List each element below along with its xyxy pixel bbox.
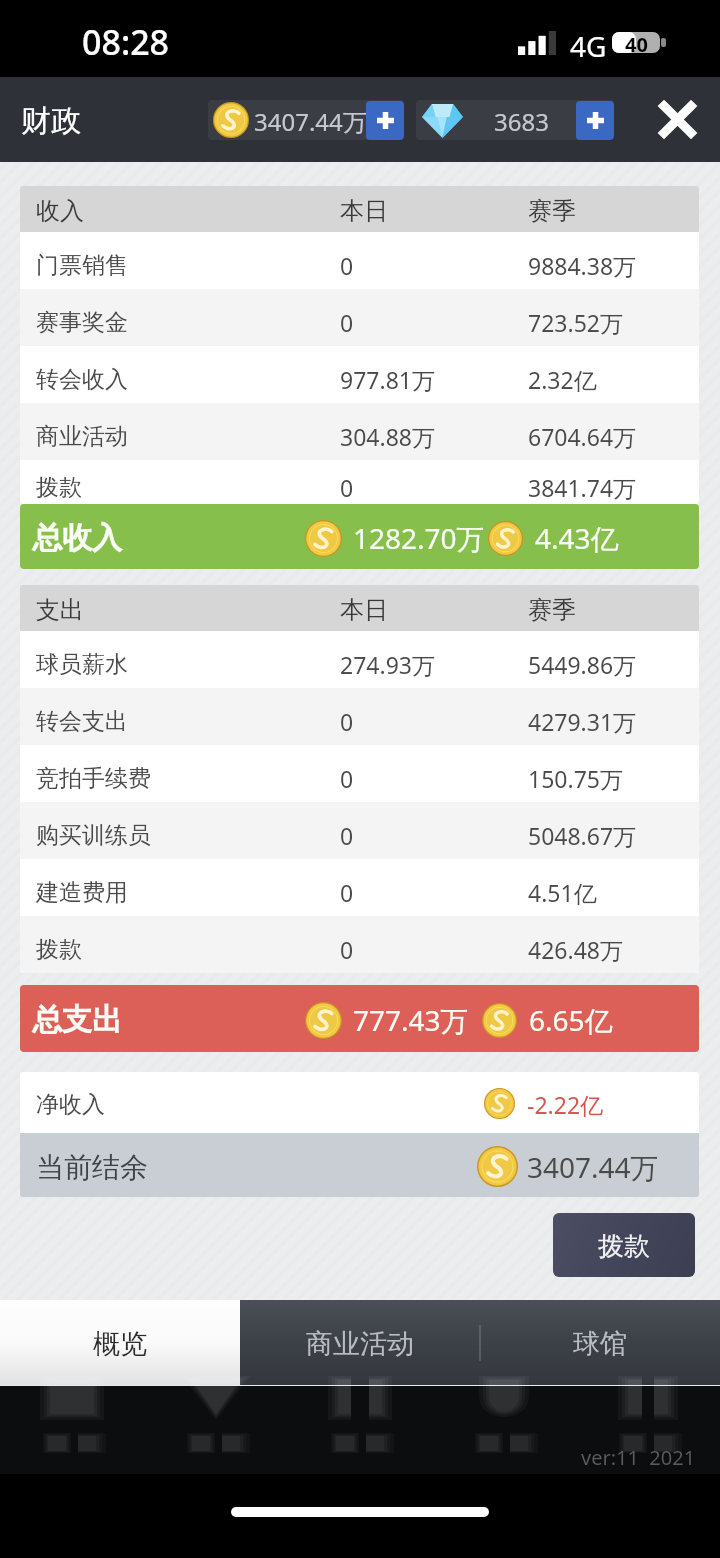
button[interactable]: 球员薪水 (20, 631, 699, 688)
staticText: 0 (340, 820, 354, 851)
staticText: 9884.38万 (528, 250, 637, 281)
staticText: 0 (340, 763, 354, 794)
button[interactable]: 总收入 (20, 504, 699, 569)
staticText: 总收入 (32, 519, 122, 557)
staticText: 支出 (36, 595, 84, 625)
button[interactable]: 概览 (0, 1300, 240, 1385)
staticText: 08:28 (82, 19, 170, 65)
staticText: 收入 (36, 196, 84, 226)
button[interactable]: 门票销售 (20, 232, 699, 289)
staticText: 当前结余 (36, 1150, 148, 1185)
staticText: 0 (340, 877, 354, 908)
staticText: 商业活动 (36, 422, 128, 451)
staticText: 6704.64万 (528, 421, 637, 452)
staticText: 0 (340, 934, 354, 965)
staticText: 274.93万 (340, 649, 435, 680)
staticText: 4279.31万 (528, 706, 637, 737)
button[interactable]: 3683 (416, 100, 614, 140)
staticText: 304.88万 (340, 421, 435, 452)
staticText: 3407.44万 (527, 1148, 659, 1186)
button[interactable]: 竞拍手续费 (20, 745, 699, 802)
staticText: 概览 (93, 1327, 147, 1361)
staticText: -2.22亿 (527, 1089, 604, 1120)
staticText: 0 (340, 250, 354, 281)
staticText: 球馆 (573, 1327, 627, 1361)
button[interactable]: 球馆 (480, 1300, 720, 1385)
staticText: 0 (340, 706, 354, 737)
button[interactable]: 3407.44万 (208, 100, 404, 140)
staticText: 2.32亿 (528, 364, 597, 395)
staticText: 5449.86万 (528, 649, 637, 680)
staticText: 6.65亿 (529, 1001, 613, 1039)
staticText: 赛事奖金 (36, 308, 128, 337)
staticText: 总支出 (32, 1001, 122, 1039)
staticText: 3407.44万 (254, 105, 367, 138)
button[interactable]: Add (576, 101, 614, 140)
staticText: 3683 (494, 105, 549, 138)
button[interactable]: 净收入 (20, 1072, 699, 1133)
staticText: 门票销售 (36, 251, 128, 280)
button[interactable]: Close (649, 91, 706, 148)
staticText: 777.43万 (353, 1001, 469, 1039)
staticText: 3841.74万 (528, 472, 637, 503)
button[interactable]: 商业活动 (240, 1300, 480, 1385)
staticText: 426.48万 (528, 934, 623, 965)
staticText: 赛季 (528, 595, 576, 625)
staticText: 竞拍手续费 (36, 764, 151, 793)
staticText: 拨款 (36, 473, 82, 502)
button[interactable]: 赛事奖金 (20, 289, 699, 346)
staticText: 建造费用 (36, 878, 128, 907)
staticText: 购买训练员 (36, 821, 151, 850)
staticText: 1282.70万 (353, 519, 485, 557)
button[interactable]: 建造费用 (20, 859, 699, 916)
staticText: 净收入 (36, 1090, 105, 1119)
staticText: 拨款 (36, 935, 82, 964)
staticText: 商业活动 (306, 1327, 414, 1361)
staticText: 本日 (340, 595, 388, 625)
staticText: 40 (625, 31, 648, 52)
button[interactable]: 拨款 (553, 1213, 695, 1277)
button[interactable]: 当前结余 (20, 1133, 699, 1197)
staticText: 拨款 (598, 1230, 650, 1263)
staticText: 转会收入 (36, 365, 128, 394)
button[interactable]: Add (366, 101, 404, 140)
staticText: 球员薪水 (36, 650, 128, 679)
staticText: 150.75万 (528, 763, 623, 794)
staticText: 0 (340, 472, 354, 503)
staticText: 4.51亿 (528, 877, 597, 908)
button[interactable]: 购买训练员 (20, 802, 699, 859)
staticText: 0 (340, 307, 354, 338)
staticText: 转会支出 (36, 707, 128, 736)
staticText: 977.81万 (340, 364, 435, 395)
button[interactable]: 商业活动 (20, 403, 699, 460)
staticText: ver:11 2021 (581, 1444, 696, 1471)
button[interactable]: 拨款 (20, 460, 699, 504)
button[interactable]: 拨款 (20, 916, 699, 973)
staticText: 4G (570, 27, 607, 65)
staticText: 本日 (340, 196, 388, 226)
button[interactable]: 总支出 (20, 985, 699, 1052)
staticText: 5048.67万 (528, 820, 637, 851)
button[interactable]: 转会支出 (20, 688, 699, 745)
button[interactable]: 转会收入 (20, 346, 699, 403)
staticText: 4.43亿 (535, 519, 619, 557)
staticText: 723.52万 (528, 307, 623, 338)
staticText: 财政 (21, 102, 81, 140)
staticText: 赛季 (528, 196, 576, 226)
